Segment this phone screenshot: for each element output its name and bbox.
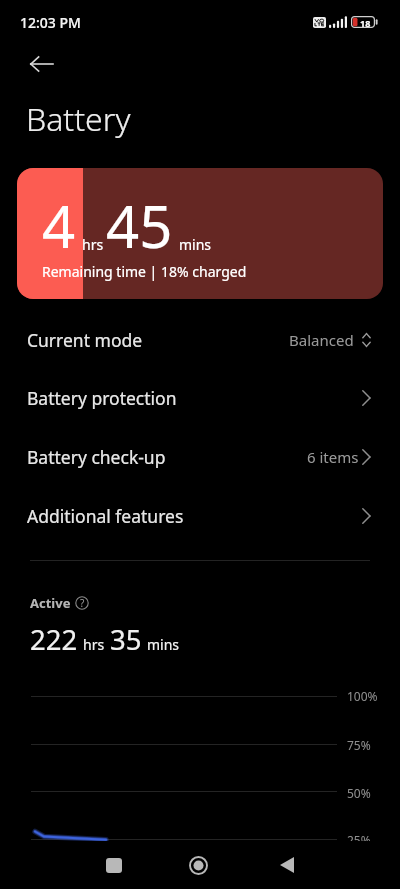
- button[interactable]: Help: [72, 593, 92, 613]
- staticText: Balanced: [289, 330, 354, 350]
- button[interactable]: Battery check-up: [0, 428, 400, 486]
- staticText: Battery check-up: [27, 445, 166, 469]
- staticText: 4: [42, 186, 76, 265]
- staticText: 18: [360, 17, 371, 29]
- staticText: ?: [80, 596, 85, 610]
- button[interactable]: Additional features: [0, 487, 400, 545]
- staticText: Battery: [26, 97, 131, 141]
- button[interactable]: Back: [258, 846, 315, 884]
- staticText: Additional features: [27, 504, 184, 528]
- button[interactable]: Recent apps: [85, 846, 142, 884]
- button[interactable]: 4: [17, 168, 383, 299]
- button[interactable]: Current mode: [0, 311, 400, 369]
- staticText: Remaining time | 18% charged: [42, 262, 247, 281]
- staticText: Current mode: [27, 328, 143, 352]
- staticText: 100%: [347, 688, 378, 704]
- staticText: 12:03 PM: [20, 13, 81, 32]
- button[interactable]: Back: [17, 40, 65, 88]
- staticText: 35: [110, 621, 142, 658]
- staticText: hrs: [83, 635, 105, 654]
- staticText: Battery protection: [27, 386, 177, 410]
- staticText: 45: [106, 186, 173, 265]
- staticText: hrs: [82, 235, 104, 254]
- staticText: mins: [147, 635, 180, 654]
- staticText: 6 items: [307, 447, 359, 467]
- button[interactable]: Battery protection: [0, 369, 400, 427]
- button[interactable]: Home: [170, 846, 227, 884]
- staticText: 222: [30, 621, 78, 658]
- staticText: mins: [179, 235, 212, 254]
- staticText: 25%: [347, 832, 371, 848]
- staticText: Active: [30, 594, 71, 612]
- staticText: 75%: [347, 737, 371, 753]
- staticText: 50%: [347, 785, 371, 801]
